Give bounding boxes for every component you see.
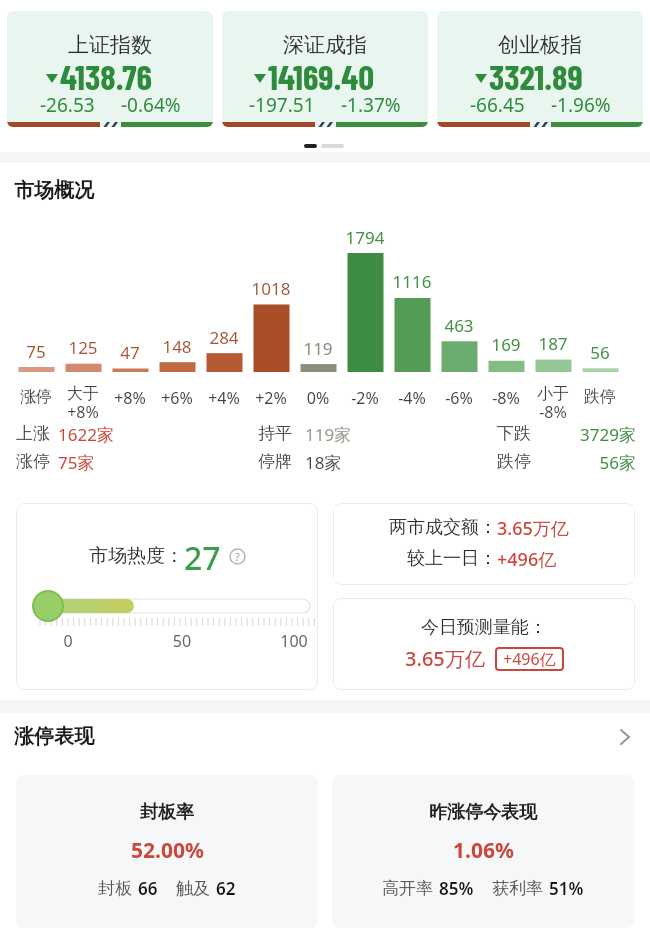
staticText: ? — [235, 549, 240, 564]
staticText: 125 — [53, 336, 113, 359]
staticText: 75 — [6, 340, 66, 363]
staticText: -0.64% — [121, 92, 181, 118]
staticText: +496亿 — [503, 648, 556, 670]
staticText: 封板 — [98, 878, 132, 899]
button[interactable]: 创业板指 — [437, 11, 643, 127]
staticText: 47 — [100, 341, 160, 364]
staticText: 上涨 — [16, 423, 76, 444]
staticText: 50 — [167, 630, 197, 652]
staticText: 75家 — [58, 451, 178, 474]
staticText: 涨停表现 — [14, 724, 94, 749]
staticText: 56家 — [516, 451, 636, 474]
staticText: 27 — [184, 536, 221, 576]
staticText: 18家 — [305, 451, 425, 474]
staticText: 463 — [429, 314, 489, 337]
staticText: 大于 +8% — [53, 384, 113, 423]
staticText: 0 — [53, 630, 83, 652]
staticText: 3.65万亿 — [405, 645, 485, 672]
staticText: 1116 — [382, 270, 442, 293]
button[interactable]: 两市成交额： — [333, 503, 635, 585]
staticText: 跌停 — [497, 451, 557, 472]
staticText: 119家 — [305, 423, 425, 446]
button[interactable]: 昨涨停今表现 — [332, 775, 634, 928]
staticText: 4138.76 — [60, 55, 152, 97]
staticText: 较上一日： — [407, 547, 497, 570]
staticText: 0% — [288, 387, 348, 409]
button[interactable]: 深证成指 — [222, 11, 428, 127]
staticText: -8% — [476, 387, 536, 409]
staticText: 下跌 — [497, 423, 557, 444]
staticText: +6% — [147, 387, 207, 409]
staticText: 停牌 — [258, 451, 318, 472]
staticText: -2% — [335, 387, 395, 409]
button[interactable]: 封板率 — [16, 775, 318, 928]
staticText: 市场热度： — [89, 544, 184, 568]
staticText: 187 — [523, 332, 583, 355]
staticText: 148 — [147, 335, 207, 358]
button[interactable]: 今日预测量能： — [333, 598, 635, 690]
staticText: -197.51 — [249, 92, 315, 118]
staticText: 持平 — [258, 423, 318, 444]
staticText: 深证成指 — [283, 32, 367, 58]
staticText: 昨涨停今表现 — [429, 801, 537, 824]
staticText: 62 — [216, 877, 236, 900]
staticText: 两市成交额： — [389, 516, 497, 539]
staticText: 高开率 — [382, 878, 433, 899]
staticText: -66.45 — [470, 92, 525, 118]
staticText: -1.96% — [551, 92, 611, 118]
staticText: 涨停 — [16, 451, 76, 472]
staticText: 触及 — [176, 878, 210, 899]
staticText: -1.37% — [341, 92, 401, 118]
staticText: 100 — [279, 630, 309, 652]
staticText: 52.00% — [131, 836, 204, 865]
staticText: 小于 -8% — [523, 384, 583, 423]
staticText: 119 — [288, 337, 348, 360]
button[interactable]: 涨停表现 — [14, 724, 632, 749]
staticText: 3.65万亿 — [497, 516, 569, 541]
staticText: 66 — [138, 877, 158, 900]
staticText: 51% — [549, 877, 584, 900]
staticText: -4% — [382, 387, 442, 409]
staticText: 1622家 — [58, 423, 178, 446]
button[interactable]: 市场热度： — [16, 503, 318, 690]
staticText: 3729家 — [516, 423, 636, 446]
staticText: +496亿 — [497, 547, 557, 572]
staticText: 169 — [476, 333, 536, 356]
staticText: -26.53 — [40, 92, 95, 118]
staticText: 获利率 — [492, 878, 543, 899]
staticText: 1794 — [335, 226, 395, 249]
staticText: 1018 — [241, 277, 301, 300]
staticText: 284 — [194, 326, 254, 349]
staticText: +8% — [100, 387, 160, 409]
staticText: 涨停 — [6, 387, 66, 407]
staticText: 封板率 — [140, 801, 194, 824]
staticText: 上证指数 — [68, 32, 152, 58]
button[interactable]: 上证指数 — [7, 11, 213, 127]
staticText: 14169.40 — [268, 55, 375, 97]
staticText: 85% — [439, 877, 474, 900]
staticText: 创业板指 — [498, 32, 582, 58]
staticText: 市场概况 — [14, 178, 214, 203]
staticText: 3321.89 — [489, 55, 583, 97]
staticText: 跌停 — [570, 387, 630, 407]
staticText: +2% — [241, 387, 301, 409]
staticText: 56 — [570, 341, 630, 364]
staticText: 1.06% — [453, 836, 514, 865]
staticText: -6% — [429, 387, 489, 409]
staticText: +4% — [194, 387, 254, 409]
staticText: 今日预测量能： — [421, 616, 547, 639]
